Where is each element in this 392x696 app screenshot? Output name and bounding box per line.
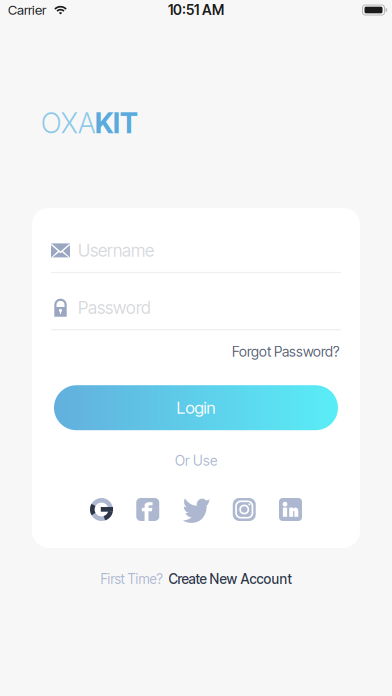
staticText: Password [78,297,151,318]
button[interactable]: Sign in with Twitter [182,496,209,523]
staticText: Carrier [8,2,46,18]
button[interactable]: Sign in with LinkedIn [279,498,302,521]
button[interactable]: Sign in with Instagram [233,498,256,521]
button[interactable]: Sign in with Google [90,498,113,521]
staticText: Login [176,398,215,418]
button[interactable]: First Time? [0,565,392,593]
button[interactable]: Login [51,385,341,430]
button[interactable]: Sign in with Facebook [136,498,159,521]
staticText: KIT [95,106,138,140]
staticText: OXA [41,106,95,140]
button[interactable]: Forgot Password? [51,338,341,365]
staticText: Forgot Password? [232,343,339,360]
staticText: Or Use [175,452,217,469]
staticText: 10:51 AM [168,1,224,18]
staticText: First Time? [100,571,162,587]
staticText: Create New Account [168,571,291,587]
staticText: Username [78,240,154,261]
